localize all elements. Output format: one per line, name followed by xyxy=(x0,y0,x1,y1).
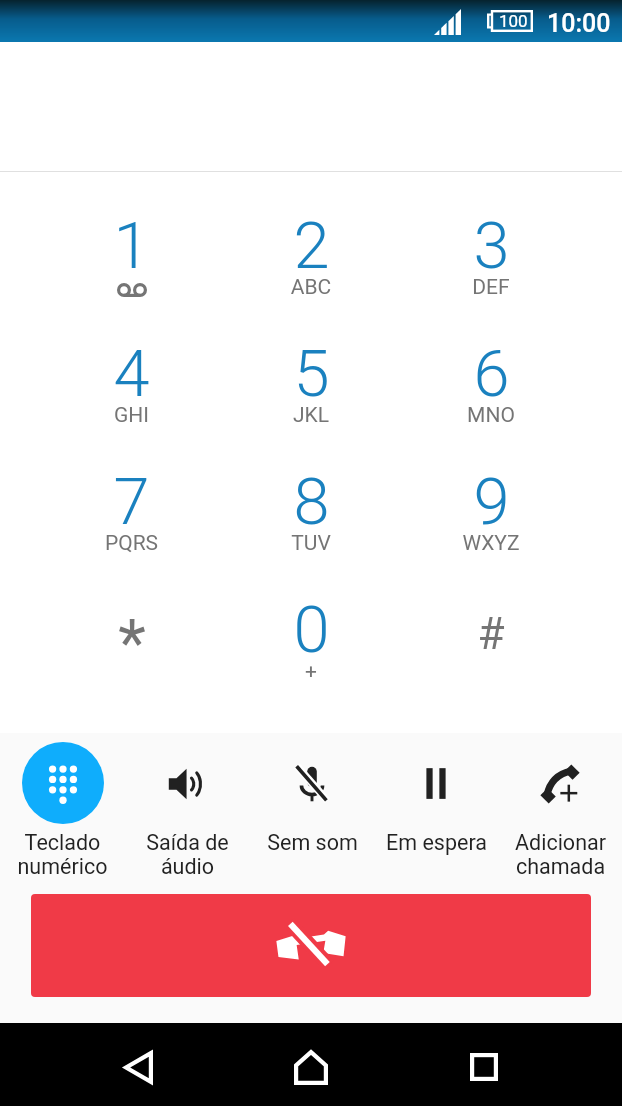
staticText: 100 xyxy=(499,11,528,31)
button[interactable]: Recents xyxy=(444,1027,524,1106)
button[interactable]: 6 xyxy=(401,308,581,436)
staticText: # xyxy=(477,608,505,660)
button[interactable]: 1 xyxy=(42,180,221,308)
staticText: + xyxy=(221,659,401,684)
button[interactable]: Teclado numérico xyxy=(0,742,125,879)
staticText: GHI xyxy=(42,403,221,428)
button[interactable]: End call xyxy=(31,894,591,997)
staticText: 9 xyxy=(473,464,510,540)
staticText: 7 xyxy=(113,464,150,540)
staticText: 5 xyxy=(293,336,330,412)
staticText: PQRS xyxy=(42,531,221,556)
staticText: ABC xyxy=(221,275,401,300)
staticText: 1 xyxy=(113,208,150,284)
staticText: Sem som xyxy=(267,830,358,855)
staticText: * xyxy=(118,606,146,681)
button[interactable]: Adicionar chamada xyxy=(498,742,622,879)
button[interactable]: Saída de áudio xyxy=(125,742,250,879)
button[interactable]: 9 xyxy=(401,436,581,564)
staticText: DEF xyxy=(401,275,581,300)
staticText: 2 xyxy=(293,208,330,284)
staticText: TUV xyxy=(221,531,401,556)
staticText: 4 xyxy=(113,336,150,412)
staticText: Saída de áudio xyxy=(146,830,229,879)
staticText: 3 xyxy=(473,208,510,284)
button[interactable]: 2 xyxy=(221,180,401,308)
button[interactable]: * xyxy=(42,564,221,692)
button[interactable]: 3 xyxy=(401,180,581,308)
button[interactable]: # xyxy=(401,564,581,692)
staticText: 6 xyxy=(473,336,510,412)
button[interactable]: Sem som xyxy=(250,742,374,855)
staticText: MNO xyxy=(401,403,581,428)
staticText: JKL xyxy=(221,403,401,428)
button[interactable]: 8 xyxy=(221,436,401,564)
button[interactable]: Em espera xyxy=(374,742,498,855)
button[interactable]: 0 xyxy=(221,564,401,692)
button[interactable]: 4 xyxy=(42,308,221,436)
staticText: Adicionar chamada xyxy=(515,830,606,879)
staticText: 8 xyxy=(293,464,330,540)
staticText: Teclado numérico xyxy=(17,830,108,879)
button[interactable]: Home xyxy=(271,1027,351,1106)
button[interactable]: Back xyxy=(98,1027,178,1106)
staticText: 0 xyxy=(293,592,330,668)
staticText: Em espera xyxy=(386,830,487,855)
button[interactable]: 5 xyxy=(221,308,401,436)
button[interactable]: 7 xyxy=(42,436,221,564)
staticText: 10:00 xyxy=(547,9,611,38)
staticText: WXYZ xyxy=(401,531,581,556)
